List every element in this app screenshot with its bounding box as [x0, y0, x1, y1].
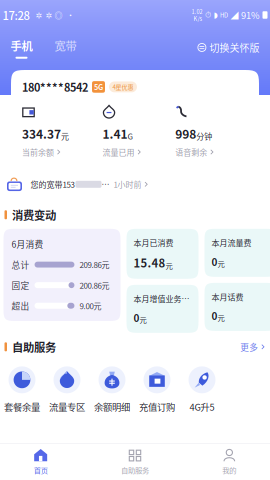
staticText: 流量已用	[102, 146, 134, 158]
staticText: 流量专区	[49, 400, 85, 413]
staticText: 0	[133, 310, 139, 325]
button[interactable]: 4G升5	[179, 365, 224, 413]
button[interactable]: 宽带	[32, 37, 76, 59]
staticText: 0	[211, 254, 217, 269]
staticText: 本月增值业务扣费	[133, 293, 191, 304]
staticText: …	[101, 178, 109, 190]
button[interactable]: 首页	[0, 449, 88, 475]
button[interactable]: 本月增值业务扣费	[126, 285, 198, 333]
button[interactable]: 更多	[240, 341, 265, 353]
staticText: 语音剩余	[175, 146, 207, 158]
staticText: 4星优惠	[112, 82, 133, 91]
button[interactable]: 手机	[10, 37, 32, 59]
staticText: ◢	[230, 9, 238, 21]
button[interactable]: 自助服务	[88, 449, 182, 475]
button[interactable]: 余额明细	[89, 365, 134, 413]
staticText: 自助服务	[12, 339, 56, 355]
staticText: 超出	[11, 299, 29, 312]
button[interactable]: 充值订购	[134, 365, 179, 413]
staticText: 998	[175, 125, 196, 142]
staticText: 当前余额	[22, 146, 54, 158]
staticText: 元	[165, 260, 172, 271]
staticText: 我的	[222, 465, 236, 475]
staticText: 本月流量费	[211, 237, 251, 248]
staticText: 首页	[34, 465, 48, 475]
staticText: 本月话费	[211, 291, 243, 302]
staticText: 元	[61, 130, 69, 142]
staticText: 充值订购	[139, 400, 175, 413]
staticText: 切换关怀版	[209, 40, 259, 55]
staticText: 分钟	[196, 130, 212, 142]
staticText: 334.37	[22, 125, 61, 142]
staticText: 消费变动	[12, 207, 56, 223]
staticText: 209.86元	[79, 259, 109, 270]
button[interactable]: 流量专区	[44, 365, 89, 413]
button[interactable]: 998	[175, 105, 214, 158]
staticText: 4G升5	[189, 400, 214, 413]
button[interactable]: 切换关怀版	[197, 40, 259, 59]
button[interactable]: 本月已消费	[126, 229, 198, 279]
staticText: ✲ ✲ ◎ ·	[29, 9, 74, 21]
staticText: 1.02	[191, 7, 202, 15]
button[interactable]: 1.41	[102, 105, 142, 158]
staticText: 0	[211, 308, 217, 323]
staticText: 元	[139, 314, 146, 325]
staticText: 200.86元	[79, 279, 109, 291]
button[interactable]: 您的宽带153	[0, 168, 270, 201]
staticText: 1.41	[102, 125, 127, 142]
staticText: 17:28	[2, 7, 29, 23]
button[interactable]: 我的	[182, 449, 270, 475]
button[interactable]: 套餐余量	[0, 365, 44, 413]
staticText: 元	[217, 312, 224, 323]
staticText: 套餐余量	[4, 400, 40, 413]
staticText: ⏱	[205, 11, 211, 19]
staticText: 固定	[11, 279, 29, 291]
staticText: 余额明细	[94, 400, 130, 413]
button[interactable]: 本月话费	[204, 283, 270, 331]
staticText: G	[127, 130, 133, 142]
staticText: 更多	[240, 341, 258, 353]
staticText: 本月已消费	[133, 237, 173, 248]
staticText: 总计	[11, 258, 29, 271]
staticText: 自助服务	[121, 465, 149, 475]
staticText: HD	[220, 11, 228, 19]
staticText: 9.00元	[79, 300, 101, 311]
staticText: 您的宽带153	[30, 178, 74, 190]
staticText: ◗	[213, 10, 217, 20]
staticText: 手机	[10, 37, 32, 54]
staticText: 元	[217, 258, 224, 269]
staticText: K/s	[193, 14, 202, 23]
staticText: 宽带	[54, 37, 76, 54]
staticText: 6月消费	[11, 238, 43, 250]
staticText: 5G	[94, 82, 103, 92]
staticText: 180****8542	[22, 79, 88, 95]
staticText: 91%	[241, 8, 260, 22]
button[interactable]: 334.37	[22, 105, 69, 158]
staticText: 1小时前	[113, 178, 141, 190]
staticText: 15.48	[133, 254, 165, 271]
button[interactable]: 本月流量费	[204, 229, 270, 277]
